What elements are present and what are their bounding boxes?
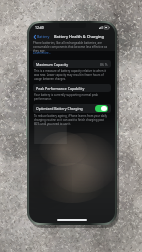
button[interactable]: Optimized Battery Charging (33, 104, 111, 113)
staticText: Peak Performance Capability (36, 86, 85, 91)
staticText: Battery (37, 34, 50, 39)
staticText: Your battery is currently supporting nor… (34, 93, 110, 101)
button[interactable]: Learn more... (33, 51, 52, 55)
staticText: Maximum Capacity (36, 62, 69, 67)
staticText: To reduce battery ageing, iPhone learns … (34, 114, 110, 126)
staticText: 12:40 (35, 25, 44, 30)
button[interactable]: Optimized Battery Charging toggle, on (95, 105, 108, 112)
staticText: 86 % (100, 62, 108, 67)
staticText: Optimized Battery Charging (36, 106, 83, 111)
staticText: This is a measure of battery capacity re… (34, 69, 110, 81)
button[interactable]: Maximum Capacity (33, 60, 111, 68)
button[interactable]: Battery (33, 33, 51, 40)
staticText: Learn more... (33, 51, 52, 55)
staticText: Phone batteries, like all rechargeable b… (33, 41, 111, 53)
staticText: Battery Health & Charging (54, 34, 105, 39)
button[interactable]: Peak Performance Capability (33, 84, 111, 92)
